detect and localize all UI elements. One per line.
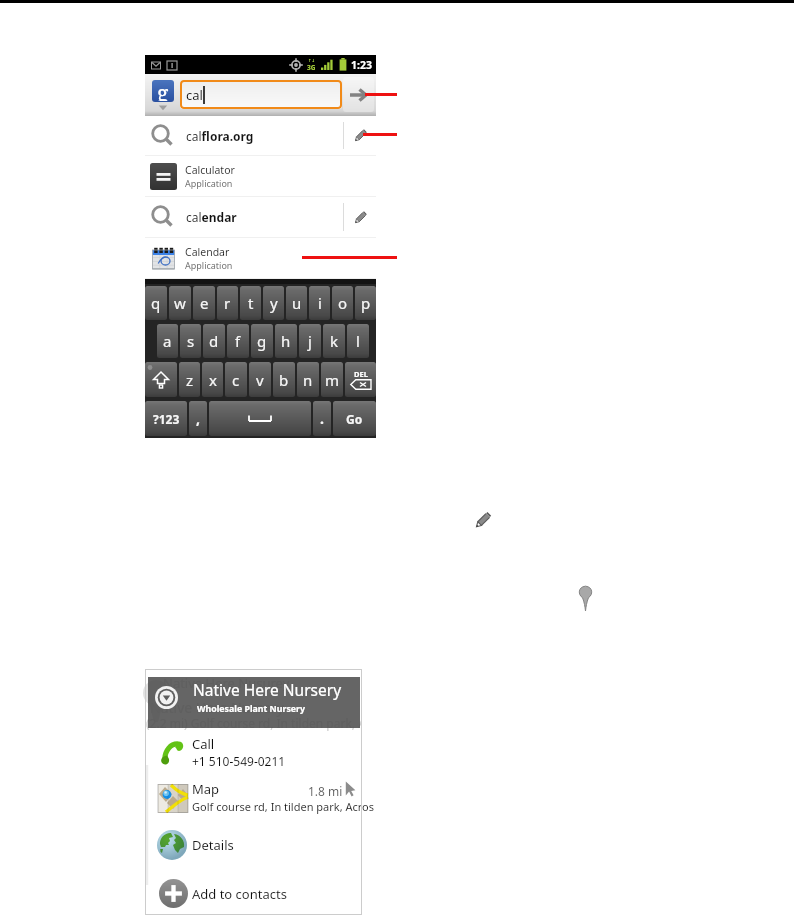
button[interactable]: Go bbox=[333, 401, 376, 436]
staticText: Details bbox=[192, 836, 234, 854]
button[interactable]: Delete bbox=[345, 362, 376, 397]
button[interactable] bbox=[146, 775, 361, 820]
button[interactable]: u bbox=[286, 286, 307, 320]
button[interactable]: l bbox=[347, 324, 369, 358]
button[interactable] bbox=[146, 730, 361, 772]
staticText: 1.8 mi bbox=[308, 783, 343, 799]
staticText: Application bbox=[185, 259, 233, 271]
button[interactable]: Edit query bbox=[344, 197, 376, 237]
button[interactable]: k bbox=[323, 324, 345, 358]
staticText: calflora.org bbox=[186, 128, 343, 144]
staticText: Wholesale Plant Nursery bbox=[197, 703, 306, 715]
button[interactable]: e bbox=[193, 286, 215, 320]
staticText: Go bbox=[346, 411, 363, 427]
staticText: Call bbox=[192, 735, 215, 753]
staticText: j bbox=[308, 331, 312, 351]
staticText: Native Here Nursery bbox=[193, 679, 342, 700]
staticText: s bbox=[187, 331, 195, 351]
staticText: c bbox=[232, 370, 240, 390]
button[interactable]: z bbox=[179, 362, 200, 397]
button[interactable]: r bbox=[217, 286, 238, 320]
button[interactable]: x bbox=[202, 362, 223, 397]
staticText: 3G bbox=[307, 63, 316, 72]
staticText: d bbox=[209, 331, 219, 351]
staticText: k bbox=[330, 331, 339, 351]
button[interactable]: o bbox=[332, 286, 353, 320]
button[interactable]: g bbox=[251, 324, 273, 358]
button[interactable]: Google search source bbox=[152, 80, 174, 102]
staticText: calendar bbox=[186, 209, 343, 225]
button[interactable]: b bbox=[273, 362, 295, 397]
button[interactable]: , bbox=[189, 401, 207, 436]
staticText: l bbox=[356, 331, 360, 351]
button[interactable]: i bbox=[309, 286, 330, 320]
button[interactable]: Space bbox=[209, 401, 311, 436]
staticText: w bbox=[174, 293, 186, 313]
staticText: t bbox=[248, 293, 254, 313]
button[interactable]: Calendar bbox=[145, 238, 376, 278]
button[interactable]: f bbox=[227, 324, 249, 358]
staticText: DEL bbox=[354, 369, 368, 379]
button[interactable]: cal bbox=[180, 80, 342, 109]
button[interactable]: calendar bbox=[145, 197, 376, 237]
button[interactable]: . bbox=[313, 401, 331, 436]
button[interactable]: Search bbox=[343, 77, 374, 112]
button[interactable]: w bbox=[169, 286, 191, 320]
staticText: Application bbox=[185, 177, 233, 189]
staticText: 1:23 bbox=[351, 58, 372, 72]
staticText: u bbox=[292, 293, 302, 313]
button[interactable]: c bbox=[225, 362, 247, 397]
button[interactable] bbox=[146, 825, 361, 867]
staticText: h bbox=[281, 331, 291, 351]
button[interactable]: d bbox=[203, 324, 225, 358]
staticText: z bbox=[186, 370, 194, 390]
button[interactable]: ?123 bbox=[145, 401, 187, 436]
button[interactable]: n bbox=[297, 362, 319, 397]
staticText: ?123 bbox=[153, 411, 180, 427]
staticText: a bbox=[163, 331, 172, 351]
staticText: Calendar bbox=[185, 245, 230, 259]
button[interactable]: q bbox=[145, 286, 167, 320]
staticText: f bbox=[235, 331, 241, 351]
staticText: p bbox=[361, 293, 371, 313]
staticText: y bbox=[270, 293, 278, 313]
button[interactable]: t bbox=[240, 286, 261, 320]
button[interactable]: Native Here Nursery bbox=[148, 677, 360, 728]
button[interactable]: p bbox=[355, 286, 376, 320]
staticText: Native Here Nursery bbox=[150, 698, 284, 717]
button[interactable]: calflora.org bbox=[145, 116, 376, 155]
staticText: m bbox=[325, 370, 340, 390]
staticText: o bbox=[338, 293, 348, 313]
staticText: e bbox=[200, 293, 209, 313]
staticText: g bbox=[257, 331, 267, 351]
staticText: Map bbox=[192, 780, 220, 798]
staticText: n bbox=[303, 370, 313, 390]
staticText: v bbox=[256, 370, 264, 390]
staticText: Calculator bbox=[185, 163, 235, 177]
button[interactable]: v bbox=[249, 362, 271, 397]
button[interactable]: a bbox=[157, 324, 178, 358]
staticText: Native Here Nusurey bbox=[163, 674, 290, 692]
staticText: . bbox=[320, 409, 324, 428]
button[interactable]: Calculator bbox=[145, 156, 376, 196]
button[interactable]: s bbox=[180, 324, 201, 358]
staticText: ↑↓ bbox=[308, 58, 316, 63]
staticText: b bbox=[279, 370, 289, 390]
staticText: +1 510-549-0211 bbox=[192, 753, 286, 769]
button[interactable]: j bbox=[299, 324, 321, 358]
button[interactable]: y bbox=[263, 286, 284, 320]
button[interactable]: m bbox=[321, 362, 343, 397]
staticText: Golf course rd, In tilden park, Acros bbox=[192, 799, 375, 814]
staticText: (2.2 mi) Golf course rd, In tilden park,… bbox=[146, 715, 361, 731]
button[interactable]: Edit query bbox=[344, 116, 376, 155]
staticText: r bbox=[224, 293, 231, 313]
staticText: q bbox=[151, 293, 161, 313]
staticText: i bbox=[318, 293, 322, 313]
staticText: cal bbox=[186, 86, 203, 104]
staticText: g bbox=[157, 80, 169, 101]
staticText: x bbox=[209, 370, 217, 390]
button[interactable] bbox=[146, 874, 361, 916]
staticText: Add to contacts bbox=[192, 885, 287, 903]
button[interactable]: Shift bbox=[145, 362, 177, 397]
button[interactable]: h bbox=[275, 324, 297, 358]
